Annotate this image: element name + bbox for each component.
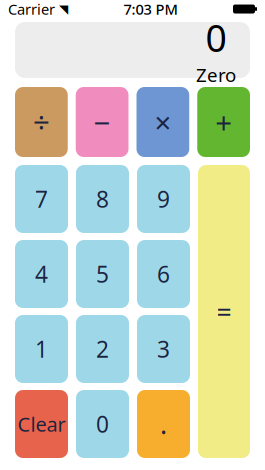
button[interactable]: 8 bbox=[76, 165, 129, 233]
staticText: 7 bbox=[35, 184, 48, 214]
button[interactable]: 6 bbox=[137, 240, 190, 308]
staticText: . bbox=[160, 406, 167, 442]
staticText: 4 bbox=[35, 259, 48, 289]
button[interactable]: . bbox=[137, 390, 190, 458]
staticText: Zero bbox=[196, 62, 236, 87]
button[interactable]: × bbox=[136, 87, 189, 157]
staticText: − bbox=[94, 102, 111, 141]
button[interactable]: 5 bbox=[76, 240, 129, 308]
staticText: Carrier bbox=[8, 0, 55, 19]
staticText: 9 bbox=[157, 184, 170, 214]
button[interactable]: Clear bbox=[15, 390, 68, 458]
button[interactable]: + bbox=[197, 87, 250, 157]
staticText: × bbox=[154, 102, 171, 141]
button[interactable]: 2 bbox=[76, 315, 129, 383]
button[interactable]: 7 bbox=[15, 165, 68, 233]
button[interactable]: 9 bbox=[137, 165, 190, 233]
staticText: ◥ bbox=[59, 2, 68, 16]
button[interactable]: 1 bbox=[15, 315, 68, 383]
staticText: 1 bbox=[35, 334, 48, 364]
staticText: 0 bbox=[96, 409, 109, 439]
staticText: 5 bbox=[96, 259, 109, 289]
button[interactable]: 0 bbox=[76, 390, 129, 458]
button[interactable]: − bbox=[76, 87, 129, 157]
staticText: Clear bbox=[17, 411, 65, 437]
staticText: + bbox=[215, 102, 232, 141]
staticText: 6 bbox=[157, 259, 170, 289]
staticText: 2 bbox=[96, 334, 109, 364]
staticText: 0 bbox=[205, 13, 226, 62]
staticText: 8 bbox=[96, 184, 109, 214]
staticText: 7:03 PM bbox=[123, 0, 177, 19]
button[interactable]: ÷ bbox=[15, 87, 68, 157]
staticText bbox=[55, 0, 59, 19]
staticText: = bbox=[216, 294, 231, 329]
staticText: 3 bbox=[157, 334, 170, 364]
button[interactable]: 4 bbox=[15, 240, 68, 308]
staticText: ÷ bbox=[33, 102, 50, 141]
button[interactable]: = bbox=[198, 165, 250, 458]
button[interactable]: 3 bbox=[137, 315, 190, 383]
